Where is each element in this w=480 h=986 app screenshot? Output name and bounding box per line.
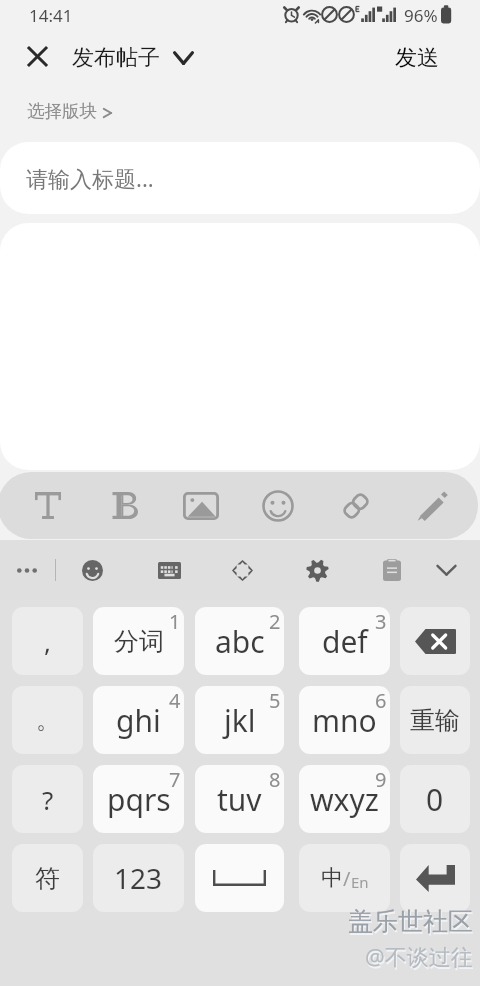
staticText: 选择版块: [27, 100, 97, 122]
button[interactable]: abc: [195, 607, 284, 675]
button[interactable]: Text style: [20, 476, 76, 535]
staticText: def: [322, 621, 368, 662]
staticText: ghi: [116, 700, 161, 741]
staticText: wxyz: [310, 779, 379, 820]
staticText: pqrs: [107, 779, 171, 820]
button[interactable]: 发送: [385, 36, 449, 80]
button[interactable]: 分词: [93, 607, 184, 675]
staticText: 盖乐世社区: [349, 908, 474, 939]
staticText: 4: [169, 687, 181, 714]
button[interactable]: ghi: [93, 686, 184, 754]
button[interactable]: Insert image: [173, 476, 229, 535]
button[interactable]: 123: [93, 844, 184, 912]
button[interactable]: Hide keyboard: [422, 540, 470, 600]
button[interactable]: Resize keyboard: [218, 540, 266, 600]
staticText: 盖乐世社区: [348, 906, 473, 937]
staticText: /: [343, 865, 351, 892]
button[interactable]: 请输入标题...: [0, 142, 480, 214]
button[interactable]: Keyboard settings: [293, 540, 341, 600]
staticText: 3: [375, 608, 387, 635]
staticText: 0: [426, 779, 444, 820]
button[interactable]: Keyboard layout: [145, 540, 193, 600]
button[interactable]: Enter: [400, 844, 470, 912]
button[interactable]: 中: [299, 844, 390, 912]
button[interactable]: pqrs: [93, 765, 184, 833]
staticText: @不谈过往: [366, 943, 474, 973]
staticText: 7: [169, 766, 181, 793]
button[interactable]: ?: [12, 765, 83, 833]
staticText: tuv: [217, 779, 262, 820]
button[interactable]: mno: [299, 686, 390, 754]
staticText: ,: [44, 624, 51, 659]
staticText: jkl: [224, 700, 256, 741]
staticText: En: [351, 872, 369, 892]
button[interactable]: Close: [11, 30, 63, 82]
button[interactable]: Insert link: [328, 476, 384, 535]
staticText: 96%: [404, 4, 438, 27]
staticText: 符: [35, 863, 60, 894]
button[interactable]: ,: [12, 607, 83, 675]
button[interactable]: Delete: [400, 607, 470, 675]
button[interactable]: jkl: [195, 686, 284, 754]
button[interactable]: Space: [195, 844, 284, 912]
staticText: 1: [169, 608, 181, 635]
staticText: 6: [375, 687, 387, 714]
staticText: 分词: [114, 626, 164, 657]
button[interactable]: 符: [12, 844, 83, 912]
staticText: 中: [321, 864, 343, 892]
button[interactable]: 。: [12, 686, 83, 754]
button[interactable]: Emoji: [68, 540, 116, 600]
button[interactable]: Clipboard: [368, 540, 416, 600]
staticText: 2: [269, 608, 281, 635]
button[interactable]: Draw: [404, 476, 460, 535]
staticText: abc: [215, 621, 265, 662]
staticText: 14:41: [29, 4, 73, 27]
button[interactable]: def: [299, 607, 390, 675]
button[interactable]: 0: [400, 765, 470, 833]
staticText: ?: [42, 782, 54, 817]
staticText: 发布帖子: [72, 44, 160, 72]
button[interactable]: 发布帖子: [68, 30, 198, 86]
button[interactable]: 选择版块: [0, 86, 126, 136]
staticText: 8: [269, 766, 281, 793]
button[interactable]: More options: [5, 540, 49, 600]
button[interactable]: Bold: [98, 476, 154, 535]
staticText: 重输: [410, 705, 460, 736]
staticText: 发送: [395, 44, 439, 72]
staticText: @不谈过往: [365, 941, 473, 971]
button[interactable]: Emoji: [250, 476, 306, 535]
staticText: 。: [36, 705, 60, 735]
staticText: 123: [114, 859, 163, 897]
staticText: 5: [269, 687, 281, 714]
staticText: mno: [312, 700, 377, 741]
staticText: 请输入标题...: [26, 163, 154, 193]
button[interactable]: 重输: [400, 686, 470, 754]
staticText: 9: [375, 766, 387, 793]
button[interactable]: tuv: [195, 765, 284, 833]
button[interactable]: wxyz: [299, 765, 390, 833]
